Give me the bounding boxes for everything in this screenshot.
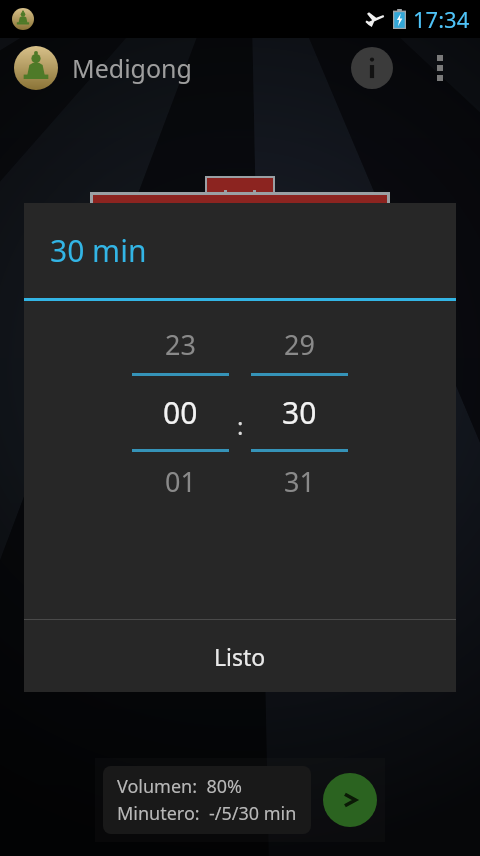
staticText: 01 xyxy=(165,463,196,500)
staticText: Listo xyxy=(214,641,266,672)
staticText: Volumen: 80% xyxy=(117,774,242,799)
button[interactable]: Info xyxy=(348,44,396,92)
button[interactable]: More options xyxy=(418,46,462,90)
staticText: 30 min xyxy=(50,230,147,271)
button[interactable]: Listo xyxy=(24,620,456,692)
button[interactable]: 31 xyxy=(251,452,348,510)
staticText: 17:34 xyxy=(413,4,470,34)
staticText: 29 xyxy=(284,326,315,363)
staticText: 31 xyxy=(284,463,315,500)
button[interactable]: Volumen: 80% xyxy=(103,766,311,834)
staticText: Minutero: -/5/30 min xyxy=(117,801,297,826)
button[interactable]: 29 xyxy=(251,315,348,373)
button[interactable]: 01 xyxy=(132,452,229,510)
button[interactable]: Start xyxy=(323,773,377,827)
staticText: Medigong xyxy=(72,51,192,85)
staticText: 23 xyxy=(165,326,196,363)
staticText: : xyxy=(237,409,244,442)
button[interactable]: 23 xyxy=(132,315,229,373)
staticText: 00 xyxy=(163,392,198,433)
staticText: 30 xyxy=(282,392,317,433)
button[interactable]: 00 xyxy=(132,376,229,449)
button[interactable]: 30 xyxy=(251,376,348,449)
